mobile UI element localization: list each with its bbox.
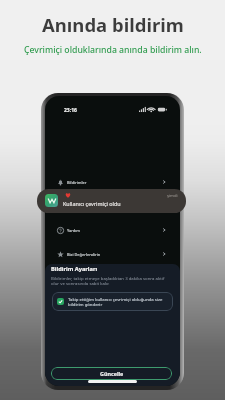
button[interactable]: Bizi Değerlendirin [45,243,180,265]
staticText: Bildirim Ayarları [51,265,98,273]
button[interactable]: Güncelle [51,367,172,380]
staticText: 23:16 [64,107,77,114]
staticText: Bildirimler, takip etmeye başladıktan 3 … [51,275,169,286]
staticText: Çevrimiçi olduklarında anında bildirim a… [24,44,202,56]
button[interactable]: Takip ettiğim kullanıcı çevrimiçi olduğu… [52,292,173,311]
staticText: Anında bildirim [42,12,184,37]
staticText: Yardım [67,228,81,233]
button[interactable]: Kullanıcı çevrimiçi oldu [37,189,186,213]
staticText: Takip ettiğim kullanıcı çevrimiçi olduğu… [68,296,169,307]
staticText: Kullanıcı çevrimiçi oldu [63,200,121,207]
staticText: Bizi Değerlendirin [67,252,101,257]
staticText: şimdi [167,193,178,199]
button[interactable]: Yardım [45,219,180,241]
button[interactable]: Bildirimler [45,171,180,193]
staticText: Bildirimler [67,180,87,185]
staticText: Güncelle [100,370,124,377]
